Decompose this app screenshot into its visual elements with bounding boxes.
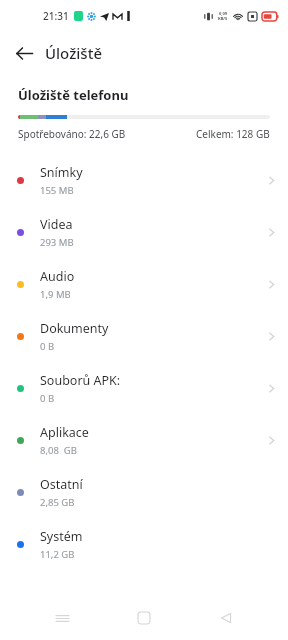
staticText: 21:31 <box>43 9 69 23</box>
staticText: 1,9 MB <box>40 288 71 301</box>
staticText: Celkem: 128 GB <box>196 127 270 141</box>
staticText: Souborů APK: <box>40 372 121 389</box>
button[interactable]: Systém <box>0 518 288 570</box>
staticText: 155 MB <box>40 184 74 197</box>
button[interactable]: Back <box>7 36 41 70</box>
button[interactable]: Aplikace <box>0 414 288 466</box>
staticText: Systém <box>40 528 83 545</box>
button[interactable]: Souborů APK: <box>0 362 288 414</box>
button[interactable]: Videa <box>0 206 288 258</box>
staticText: Úložiště telefonu <box>18 86 129 104</box>
button[interactable]: Ostatní <box>0 466 288 518</box>
staticText: 2,85 GB <box>40 496 75 509</box>
staticText: Spotřebováno: 22,6 GB <box>18 127 126 141</box>
staticText: 0,09 <box>219 11 228 16</box>
staticText: Ostatní <box>40 476 83 493</box>
staticText: Videa <box>40 216 73 233</box>
button[interactable]: Recent apps <box>42 598 82 638</box>
staticText: Úložiště <box>45 43 102 63</box>
staticText: Aplikace <box>40 424 89 441</box>
staticText: 293 MB <box>40 236 74 249</box>
button[interactable]: Audio <box>0 258 288 310</box>
staticText: 8,08 GB <box>40 444 77 457</box>
button[interactable]: Snímky <box>0 154 288 206</box>
staticText: Snímky <box>40 164 83 181</box>
staticText: 0 B <box>40 340 55 353</box>
staticText: Dokumenty <box>40 320 109 337</box>
button[interactable]: Dokumenty <box>0 310 288 362</box>
staticText: KB/S <box>218 16 228 21</box>
button[interactable]: Home <box>124 598 164 638</box>
staticText: 11,2 GB <box>40 548 75 561</box>
staticText: 0 B <box>40 392 55 405</box>
staticText: Audio <box>40 268 75 285</box>
button[interactable]: Back <box>206 598 246 638</box>
